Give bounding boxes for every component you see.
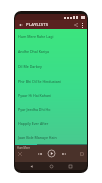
staticText: Andhe Dhal Kariya: [18, 49, 50, 54]
staticText: Hum Mere: [17, 146, 30, 150]
staticText: Dil Me Darbey: [18, 64, 42, 69]
button[interactable]: Jaan Bole Manaye Hain: [15, 130, 87, 144]
button[interactable]: More options: [79, 22, 85, 28]
button[interactable]: Happily Ever After: [15, 116, 87, 130]
button[interactable]: Andhe Dhal Kariya: [15, 44, 87, 59]
button[interactable]: Dil Me Darbey: [15, 59, 87, 74]
button[interactable]: Play: [47, 149, 56, 158]
staticText: Pyaar Hi Hai Kahani: [18, 93, 52, 98]
staticText: Phir Bhi Dil Se Hindustani: [18, 79, 61, 84]
staticText: Pyar Jeedha Dhi Ho: [18, 107, 51, 112]
button[interactable]: Previous: [36, 150, 43, 157]
button[interactable]: Pyaar Hi Hai Kahani: [15, 88, 87, 102]
button[interactable]: Repeat: [79, 151, 85, 157]
staticText: Jaan Bole Manaye Hain: [18, 135, 57, 140]
button[interactable]: Share: [72, 21, 79, 28]
button[interactable]: Hum Mere Rahe Lagi: [15, 29, 87, 44]
staticText: Happily Ever After: [18, 121, 49, 126]
button[interactable]: Recents: [67, 163, 74, 170]
button[interactable]: Back: [17, 21, 24, 28]
button[interactable]: Home: [48, 163, 55, 170]
button[interactable]: Shuffle: [17, 151, 23, 157]
button[interactable]: Phir Bhi Dil Se Hindustani: [15, 74, 87, 88]
button[interactable]: Pyar Jeedha Dhi Ho: [15, 102, 87, 116]
staticText: PLAYLISTS: [26, 22, 49, 28]
button[interactable]: Next: [60, 150, 67, 157]
staticText: Hum Mere Rahe Lagi: [18, 34, 54, 39]
button[interactable]: Back: [28, 163, 35, 170]
